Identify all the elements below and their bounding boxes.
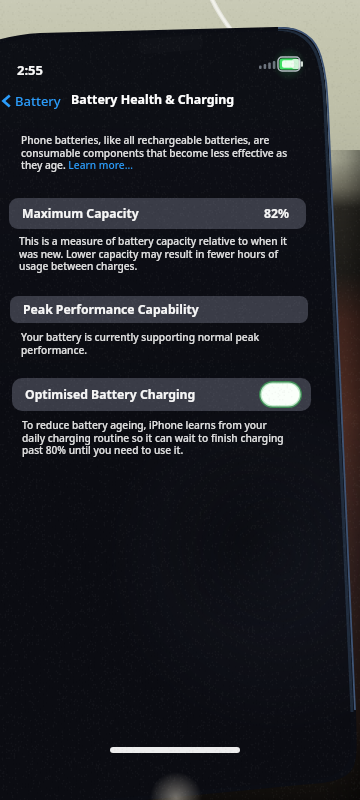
staticText: Peak Performance Capability	[23, 301, 199, 318]
button[interactable]: Optimised Battery Charging toggle, on	[259, 381, 302, 408]
staticText: To reduce battery ageing, iPhone learns …	[22, 418, 284, 457]
staticText: Battery	[15, 92, 61, 110]
staticText: Maximum Capacity	[22, 205, 139, 222]
staticText: Optimised Battery Charging	[25, 386, 196, 403]
button[interactable]: Maximum Capacity	[9, 198, 306, 229]
staticText: This is a measure of battery capacity re…	[19, 234, 287, 273]
staticText: 2:55	[17, 61, 43, 79]
button[interactable]: Battery	[0, 89, 63, 113]
staticText: Your battery is currently supporting nor…	[21, 330, 260, 357]
staticText: Battery Health & Charging	[71, 91, 235, 108]
staticText: Phone batteries, like all rechargeable b…	[21, 133, 288, 172]
button[interactable]: Peak Performance Capability	[10, 296, 308, 323]
button[interactable]: Optimised Battery Charging	[12, 378, 311, 411]
staticText: 82%	[264, 205, 289, 222]
